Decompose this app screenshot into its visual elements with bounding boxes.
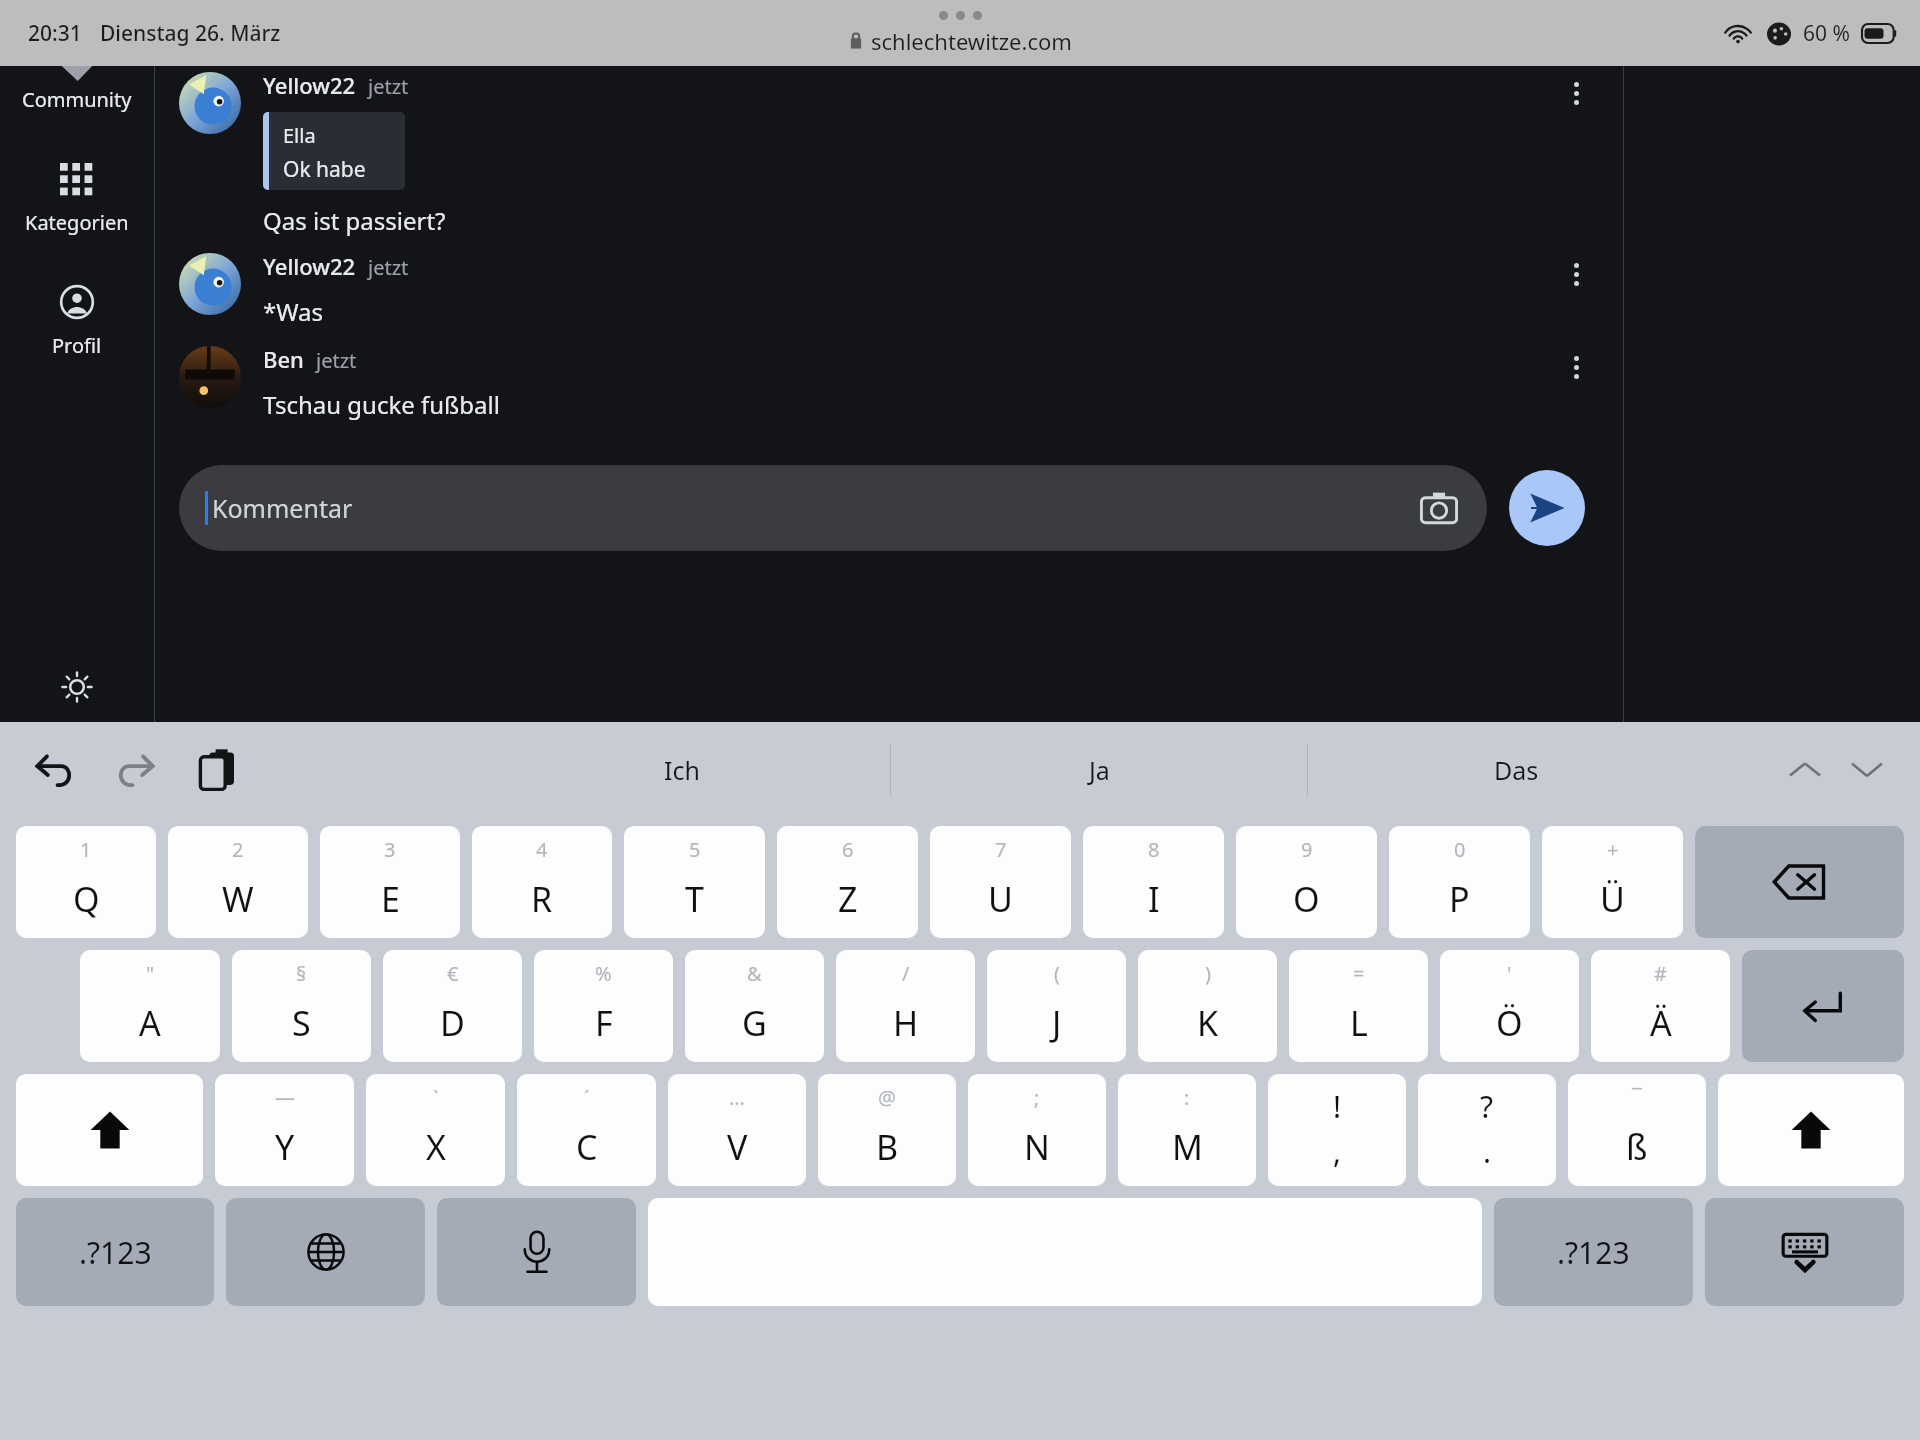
button[interactable]: 7 [930,826,1071,938]
button[interactable]: Helligkeit [52,662,102,712]
button[interactable]: Tastatur ausblenden [1705,1198,1904,1306]
staticText: 4 [536,836,548,863]
staticText: V [727,1124,748,1170]
staticText: J [1052,1000,1062,1046]
button[interactable]: ¯ [1568,1074,1706,1186]
button[interactable]: 6 [777,826,918,938]
button[interactable]: … [668,1074,806,1186]
button[interactable]: 5 [624,826,765,938]
button[interactable]: .?123 [1494,1198,1693,1306]
staticText: 5 [689,836,701,863]
staticText: Kommentar [212,491,353,525]
button[interactable]: Wiederholen [108,742,164,798]
staticText: P [1449,876,1470,922]
button[interactable]: Mehr Optionen [1553,251,1599,297]
button[interactable]: ) [1138,950,1277,1062]
button[interactable]: Das [1308,722,1724,818]
staticText: # [1654,960,1667,987]
staticText: : [1184,1084,1190,1111]
staticText: E [381,876,400,922]
button[interactable]: 0 [1389,826,1530,938]
staticText: Tschau gucke fußball [263,388,500,421]
button[interactable]: Kommentar [179,465,1487,551]
button[interactable]: & [685,950,824,1062]
button[interactable]: ( [987,950,1126,1062]
button[interactable]: Yellow22 [155,66,1623,237]
button[interactable]: ` [366,1074,505,1186]
button[interactable]: Rückgängig [26,742,82,798]
button[interactable]: % [534,950,673,1062]
staticText: ' [1507,960,1512,987]
staticText: / [902,960,910,987]
button[interactable]: Ben [155,328,1623,421]
staticText: 0 [1454,836,1466,863]
button[interactable]: Yellow22 [155,237,1623,328]
button[interactable]: Nächstes [1836,739,1898,801]
button[interactable]: Senden [1509,470,1585,546]
button[interactable]: Ja [891,722,1307,818]
staticText: 8 [1148,836,1160,863]
staticText: H [893,1000,919,1046]
staticText: U [988,876,1013,922]
staticText: Ö [1496,1000,1523,1046]
button[interactable]: 3 [320,826,460,938]
button[interactable]: Umschalt [16,1074,203,1186]
button[interactable]: .?123 [16,1198,214,1306]
button[interactable]: ' [1440,950,1579,1062]
staticText: Y [275,1124,295,1170]
button[interactable]: / [836,950,975,1062]
button[interactable]: € [383,950,522,1062]
staticText: € [447,960,459,987]
staticText: Ja [1089,753,1110,787]
staticText: ß [1626,1124,1648,1170]
button[interactable]: § [232,950,371,1062]
button[interactable]: = [1289,950,1428,1062]
button[interactable]: ; [968,1074,1106,1186]
staticText: jetzt [316,347,357,374]
button[interactable]: 1 [16,826,156,938]
button[interactable]: Umschalt [1718,1074,1904,1186]
button[interactable]: Kamera [1417,486,1461,530]
button[interactable]: Diktieren [437,1198,636,1306]
button[interactable]: Vorheriges [1774,739,1836,801]
button[interactable]: Profil [0,282,154,361]
button[interactable]: + [1542,826,1683,938]
staticText: ( [1054,960,1060,987]
staticText: 3 [384,836,396,863]
button[interactable]: # [1591,950,1730,1062]
staticText: Ich [664,753,700,787]
staticText: Das [1494,753,1539,787]
button[interactable]: Ich [474,722,890,818]
button[interactable]: 4 [472,826,612,938]
staticText: Ä [1650,1000,1672,1046]
button[interactable]: ! [1268,1074,1406,1186]
button[interactable]: Einfügen [190,742,246,798]
button[interactable]: Kategorien [0,161,154,238]
button[interactable]: Eingabe [1742,950,1904,1062]
button[interactable]: — [215,1074,354,1186]
staticText: X [426,1124,446,1170]
button[interactable]: Mehr Optionen [1553,344,1599,390]
staticText: = [1353,960,1365,987]
button[interactable]: : [1118,1074,1256,1186]
staticText: Ben [263,344,304,374]
staticText: T [685,876,704,922]
button[interactable]: ? [1418,1074,1556,1186]
staticText: .?123 [79,1232,152,1273]
staticText: S [292,1000,311,1046]
staticText: — [275,1084,295,1111]
button[interactable]: 9 [1236,826,1377,938]
staticText: Profil [52,332,102,359]
button[interactable]: 8 [1083,826,1224,938]
staticText: jetzt [368,73,409,100]
button[interactable]: " [80,950,220,1062]
button[interactable]: Sprache wechseln [226,1198,425,1306]
button[interactable]: Löschen [1695,826,1904,938]
staticText: schlechtewitze.com [871,26,1072,56]
button[interactable]: 2 [168,826,308,938]
staticText: 60 % [1803,19,1850,48]
button[interactable]: ´ [517,1074,656,1186]
button[interactable]: Mehr Optionen [1553,70,1599,116]
button[interactable]: @ [818,1074,956,1186]
